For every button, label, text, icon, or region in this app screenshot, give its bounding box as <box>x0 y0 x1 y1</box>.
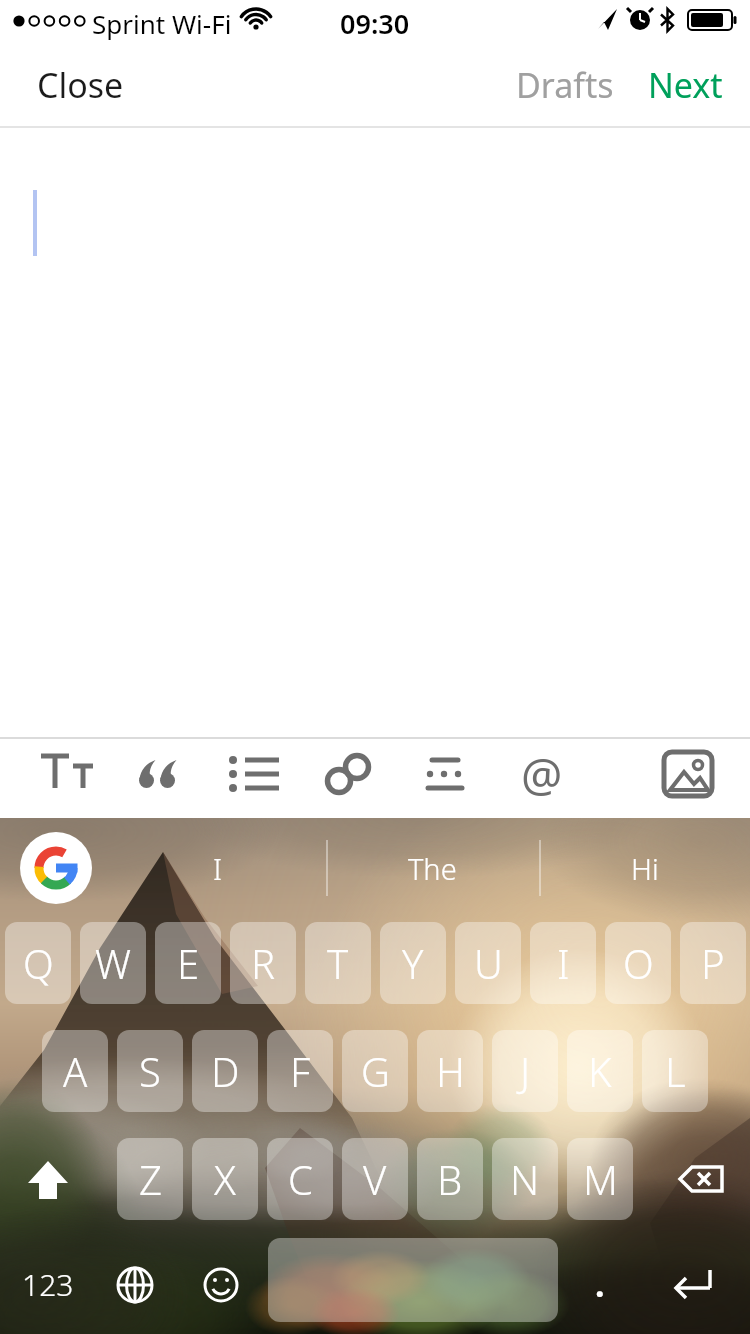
staticText: @ <box>521 743 563 806</box>
button[interactable]: Next <box>635 55 735 115</box>
button[interactable]: Y <box>380 922 446 1004</box>
button[interactable]: Q <box>5 922 71 1004</box>
button[interactable]: @ <box>506 738 578 810</box>
staticText: Close <box>37 62 124 108</box>
button[interactable]: G <box>342 1030 408 1112</box>
button[interactable]: U <box>455 922 521 1004</box>
staticText: W <box>95 936 131 990</box>
button[interactable]: . <box>570 1246 630 1322</box>
button[interactable] <box>664 1138 738 1220</box>
staticText: Hi <box>631 849 659 888</box>
staticText: 09:30 <box>340 5 410 35</box>
staticText: V <box>363 1152 387 1206</box>
button[interactable] <box>654 1246 730 1322</box>
staticText: Y <box>402 936 424 990</box>
staticText: M <box>583 1152 618 1206</box>
button[interactable]: X <box>192 1138 258 1220</box>
staticText: O <box>623 936 654 990</box>
button[interactable]: The <box>362 840 502 896</box>
staticText: Sprint Wi-Fi <box>92 6 232 41</box>
button[interactable]: T <box>305 922 371 1004</box>
staticText: L <box>665 1044 686 1098</box>
staticText: . <box>595 1261 605 1307</box>
staticText: Drafts <box>516 62 614 108</box>
staticText: X <box>214 1152 236 1206</box>
staticText: R <box>251 936 275 990</box>
staticText: 123 <box>22 1264 74 1305</box>
button[interactable]: H <box>417 1030 483 1112</box>
staticText: P <box>701 936 725 990</box>
staticText: E <box>177 936 200 990</box>
staticText: A <box>63 1044 88 1098</box>
button[interactable] <box>20 832 92 904</box>
button[interactable]: O <box>605 922 671 1004</box>
button[interactable]: I <box>148 840 288 896</box>
button[interactable] <box>29 738 101 810</box>
button[interactable]: Hi <box>575 840 715 896</box>
staticText: G <box>361 1044 390 1098</box>
button[interactable]: K <box>567 1030 633 1112</box>
staticText: I <box>213 849 223 888</box>
button[interactable] <box>217 738 289 810</box>
button[interactable]: W <box>80 922 146 1004</box>
button[interactable]: A <box>42 1030 108 1112</box>
button[interactable] <box>98 1246 172 1322</box>
staticText: J <box>520 1044 531 1098</box>
staticText: F <box>290 1044 311 1098</box>
button[interactable]: 123 <box>10 1246 86 1322</box>
button[interactable]: L <box>642 1030 708 1112</box>
button[interactable] <box>12 1138 84 1220</box>
button[interactable]: F <box>267 1030 333 1112</box>
staticText: U <box>474 936 503 990</box>
staticText: H <box>436 1044 465 1098</box>
staticText: B <box>437 1152 463 1206</box>
button[interactable]: M <box>567 1138 633 1220</box>
button[interactable] <box>652 738 724 810</box>
staticText: The <box>408 849 457 888</box>
staticText: S <box>139 1044 161 1098</box>
staticText: Q <box>23 936 54 990</box>
staticText: N <box>510 1152 540 1206</box>
button[interactable] <box>268 1238 558 1322</box>
staticText: I <box>557 936 570 990</box>
staticText: Next <box>648 62 723 108</box>
staticText: Z <box>139 1152 162 1206</box>
button[interactable]: P <box>680 922 746 1004</box>
button[interactable]: D <box>192 1030 258 1112</box>
staticText: C <box>288 1152 313 1206</box>
button[interactable]: C <box>267 1138 333 1220</box>
button[interactable]: Close <box>20 55 150 115</box>
staticText: T <box>327 936 349 990</box>
button[interactable] <box>410 738 482 810</box>
button[interactable]: N <box>492 1138 558 1220</box>
button[interactable]: B <box>417 1138 483 1220</box>
button[interactable]: Drafts <box>505 55 625 115</box>
button[interactable] <box>312 738 384 810</box>
button[interactable]: Z <box>117 1138 183 1220</box>
button[interactable]: V <box>342 1138 408 1220</box>
button[interactable] <box>184 1246 258 1322</box>
button[interactable]: I <box>530 922 596 1004</box>
staticText: K <box>588 1044 612 1098</box>
button[interactable]: R <box>230 922 296 1004</box>
button[interactable]: S <box>117 1030 183 1112</box>
button[interactable]: J <box>492 1030 558 1112</box>
button[interactable]: E <box>155 922 221 1004</box>
button[interactable] <box>124 738 196 810</box>
staticText: D <box>211 1044 240 1098</box>
